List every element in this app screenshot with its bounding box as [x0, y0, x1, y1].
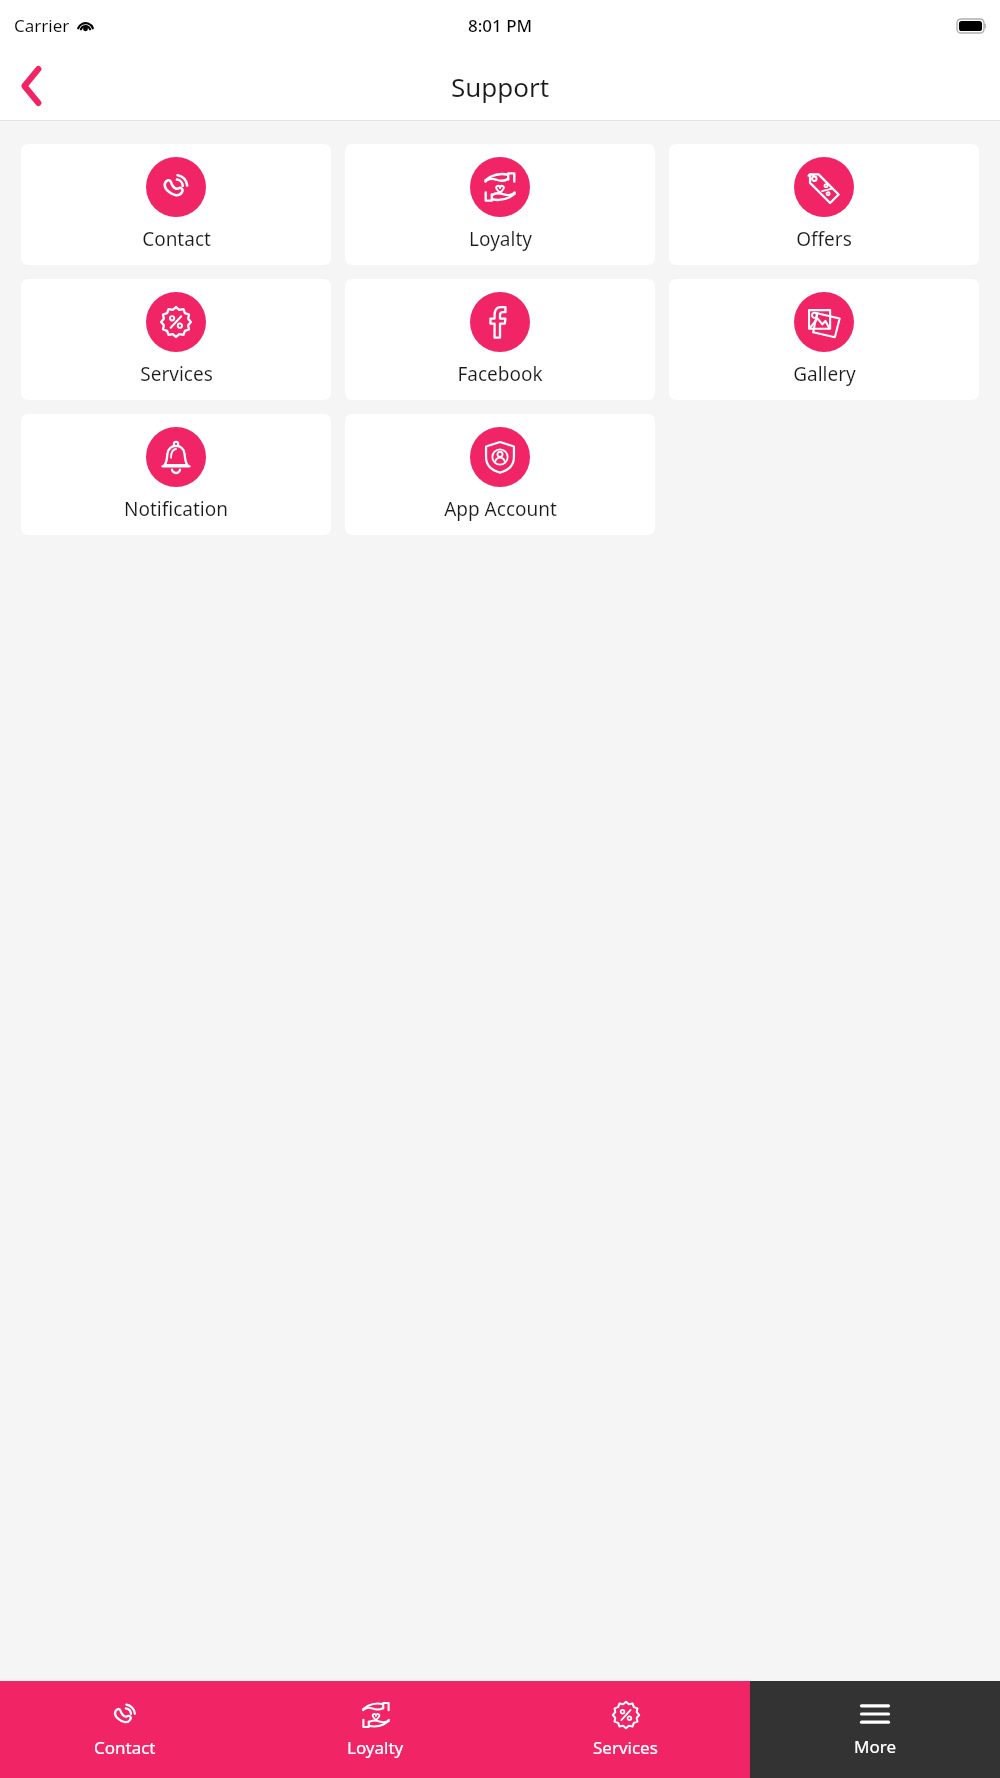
staticText: Carrier	[14, 14, 70, 37]
staticText: 8:01 PM	[468, 14, 533, 37]
staticText: Notification	[124, 496, 228, 522]
staticText: Gallery	[793, 361, 856, 387]
button[interactable]: More	[750, 1681, 1000, 1778]
button[interactable]: App Account	[345, 414, 655, 535]
staticText: Services	[140, 361, 213, 387]
button[interactable]: Back	[0, 54, 64, 118]
staticText: Support	[451, 69, 550, 104]
button[interactable]: Notification	[21, 414, 331, 535]
staticText: Loyalty	[469, 226, 532, 252]
button[interactable]: Contact	[0, 1681, 250, 1778]
staticText: Offers	[796, 226, 852, 252]
button[interactable]: Gallery	[669, 279, 979, 400]
staticText: Contact	[142, 226, 211, 252]
button[interactable]: Loyalty	[250, 1681, 500, 1778]
staticText: Loyalty	[347, 1736, 404, 1759]
staticText: Facebook	[457, 361, 543, 387]
staticText: Services	[593, 1736, 658, 1759]
button[interactable]: Loyalty	[345, 144, 655, 265]
button[interactable]: Offers	[669, 144, 979, 265]
button[interactable]: Services	[500, 1681, 750, 1778]
button[interactable]: Contact	[21, 144, 331, 265]
button[interactable]: Services	[21, 279, 331, 400]
staticText: App Account	[444, 496, 557, 522]
staticText: Contact	[94, 1736, 156, 1759]
staticText: More	[854, 1735, 896, 1758]
button[interactable]: Facebook	[345, 279, 655, 400]
